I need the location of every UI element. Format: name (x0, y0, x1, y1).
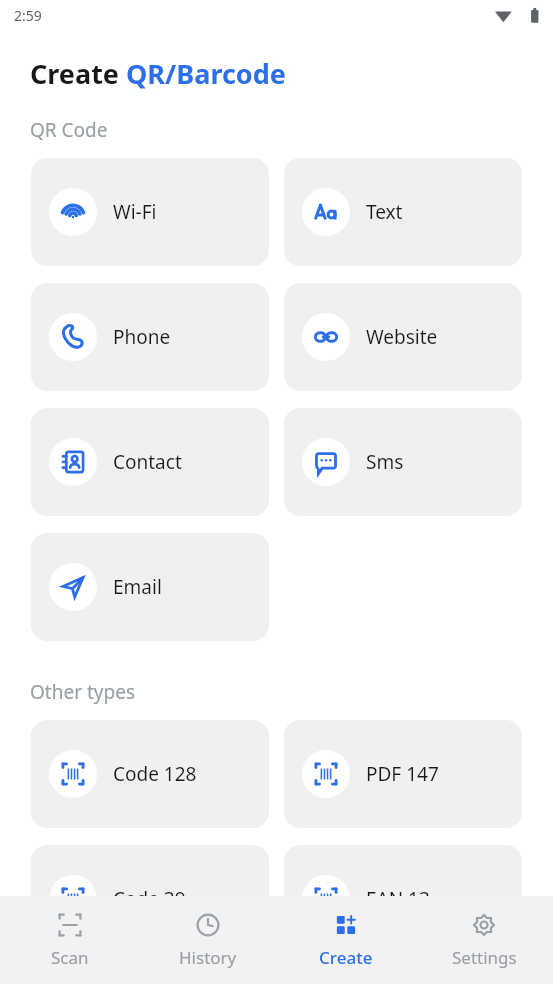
staticText: Wi-Fi (113, 199, 157, 225)
staticText: Sms (366, 449, 404, 475)
staticText: QR Code (30, 117, 108, 143)
staticText: 2:59 (14, 6, 42, 25)
staticText: Phone (113, 324, 171, 350)
button[interactable]: Website (284, 283, 522, 391)
button[interactable]: EAN 13 (284, 845, 522, 953)
staticText: Scan (51, 946, 89, 969)
staticText: Contact (113, 449, 182, 475)
button[interactable]: Code 39 (31, 845, 269, 953)
button[interactable]: Email (31, 533, 269, 641)
button[interactable]: Code 128 (31, 720, 269, 828)
staticText: Code 39 (113, 886, 186, 912)
staticText: PDF 147 (366, 761, 439, 787)
button[interactable]: Contact (31, 408, 269, 516)
staticText: Email (113, 574, 162, 600)
button[interactable]: Wi-Fi (31, 158, 269, 266)
staticText: Website (366, 324, 438, 350)
button[interactable]: Settings (415, 904, 553, 977)
staticText: EAN 13 (366, 886, 430, 912)
button[interactable]: Text (284, 158, 522, 266)
staticText: Other types (30, 679, 135, 705)
staticText: History (179, 946, 237, 969)
button[interactable]: Create (277, 904, 415, 977)
staticText: Settings (452, 946, 517, 969)
button[interactable]: Phone (31, 283, 269, 391)
staticText: Create (319, 946, 373, 969)
button[interactable]: History (139, 904, 277, 977)
staticText: Text (366, 199, 403, 225)
staticText: Create QR/Barcode (30, 55, 286, 92)
button[interactable]: Sms (284, 408, 522, 516)
button[interactable]: PDF 147 (284, 720, 522, 828)
staticText: Code 128 (113, 761, 197, 787)
button[interactable]: Scan (0, 904, 139, 977)
